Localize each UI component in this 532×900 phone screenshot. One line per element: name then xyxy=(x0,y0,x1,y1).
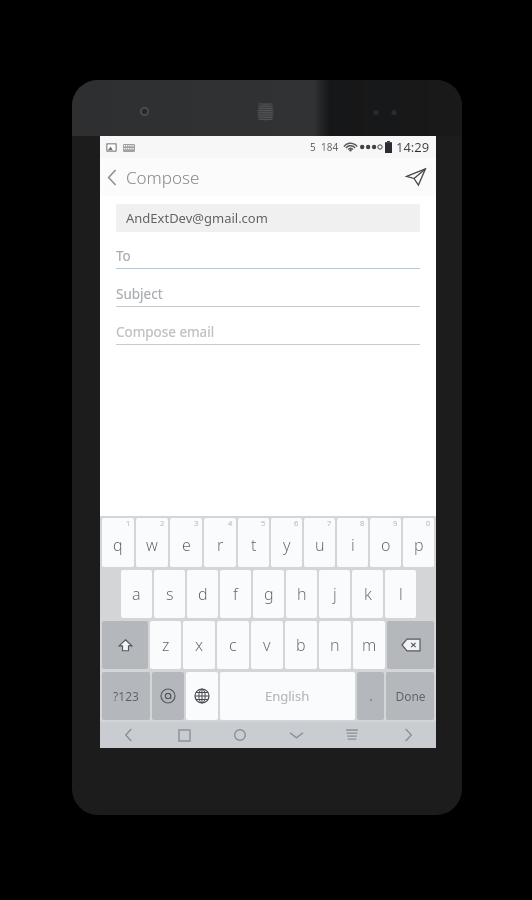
staticText: ?123 xyxy=(113,688,139,704)
staticText: 8 xyxy=(360,518,365,528)
staticText: q xyxy=(113,534,123,556)
staticText: 3 xyxy=(194,518,199,528)
button[interactable]: 3 xyxy=(170,518,202,567)
staticText: e xyxy=(182,534,191,556)
staticText: s xyxy=(166,583,174,605)
button[interactable]: z xyxy=(150,621,181,669)
button[interactable]: 5 xyxy=(238,518,269,567)
button[interactable]: Backspace xyxy=(387,621,434,669)
button[interactable]: AndExtDev@gmail.com xyxy=(116,204,420,232)
staticText: . xyxy=(369,687,373,705)
staticText: 2 xyxy=(160,518,165,528)
staticText: 7 xyxy=(327,518,332,528)
staticText: m xyxy=(362,634,377,656)
button[interactable]: b xyxy=(285,621,317,669)
staticText: w xyxy=(146,534,158,556)
button[interactable]: Subject xyxy=(116,282,420,307)
staticText: v xyxy=(263,634,271,656)
staticText: To xyxy=(116,247,131,265)
staticText: o xyxy=(381,534,391,556)
staticText: 184 xyxy=(321,140,339,154)
button[interactable]: 4 xyxy=(204,518,236,567)
button[interactable]: 2 xyxy=(136,518,168,567)
staticText: English xyxy=(265,687,310,705)
button[interactable]: Home xyxy=(212,722,268,748)
staticText: u xyxy=(315,534,325,556)
button[interactable]: 9 xyxy=(370,518,401,567)
button[interactable]: x xyxy=(183,621,215,669)
button[interactable]: Change language xyxy=(186,672,218,720)
staticText: Compose xyxy=(126,166,200,189)
button[interactable]: 7 xyxy=(304,518,335,567)
staticText: 9 xyxy=(393,518,398,528)
button[interactable]: j xyxy=(319,570,350,618)
button[interactable]: 6 xyxy=(271,518,302,567)
button[interactable]: k xyxy=(352,570,383,618)
button[interactable]: Menu xyxy=(324,722,380,748)
button[interactable]: 0 xyxy=(403,518,434,567)
button[interactable]: d xyxy=(187,570,218,618)
staticText: z xyxy=(162,634,170,656)
staticText: Done xyxy=(395,688,426,704)
button[interactable]: At sign xyxy=(152,672,184,720)
staticText: 4 xyxy=(228,518,233,528)
staticText: f xyxy=(233,583,238,605)
staticText: g xyxy=(264,583,274,605)
button[interactable]: ?123 xyxy=(102,672,150,720)
button[interactable]: h xyxy=(286,570,317,618)
button[interactable]: Compose xyxy=(100,160,208,195)
button[interactable]: Shift xyxy=(102,621,148,669)
staticText: a xyxy=(132,583,141,605)
button[interactable]: Recents xyxy=(156,722,212,748)
staticText: 0 xyxy=(426,518,431,528)
button[interactable]: v xyxy=(251,621,283,669)
staticText: 5 xyxy=(310,140,316,154)
button[interactable]: c xyxy=(217,621,249,669)
staticText: i xyxy=(351,534,355,556)
staticText: 14:29 xyxy=(396,138,430,156)
staticText: 6 xyxy=(294,518,299,528)
button[interactable]: a xyxy=(121,570,152,618)
staticText: 1 xyxy=(126,518,131,528)
button[interactable]: 1 xyxy=(102,518,134,567)
button[interactable]: Next xyxy=(380,722,436,748)
button[interactable]: 8 xyxy=(337,518,368,567)
button[interactable]: Compose email xyxy=(116,320,420,345)
staticText: t xyxy=(251,534,257,556)
button[interactable]: Done xyxy=(386,672,434,720)
button[interactable]: Send xyxy=(396,158,436,196)
button[interactable]: Hide keyboard xyxy=(268,722,324,748)
staticText: Compose email xyxy=(116,323,215,341)
button[interactable]: n xyxy=(319,621,351,669)
staticText: h xyxy=(297,583,307,605)
staticText: 5 xyxy=(261,518,266,528)
staticText: d xyxy=(198,583,208,605)
staticText: AndExtDev@gmail.com xyxy=(126,209,268,227)
button[interactable]: f xyxy=(220,570,251,618)
button[interactable]: m xyxy=(353,621,385,669)
staticText: b xyxy=(296,634,306,656)
staticText: p xyxy=(414,534,424,556)
button[interactable]: To xyxy=(116,244,420,269)
button[interactable]: g xyxy=(253,570,284,618)
button[interactable]: English xyxy=(220,672,355,720)
button[interactable]: l xyxy=(385,570,416,618)
staticText: j xyxy=(333,583,337,605)
staticText: l xyxy=(399,583,403,605)
staticText: r xyxy=(217,534,224,556)
staticText: y xyxy=(283,534,291,556)
button[interactable]: s xyxy=(154,570,185,618)
button[interactable]: Previous xyxy=(100,722,156,748)
staticText: n xyxy=(330,634,340,656)
staticText: Subject xyxy=(116,285,163,303)
staticText: x xyxy=(195,634,204,656)
staticText: c xyxy=(229,634,237,656)
staticText: k xyxy=(364,583,372,605)
